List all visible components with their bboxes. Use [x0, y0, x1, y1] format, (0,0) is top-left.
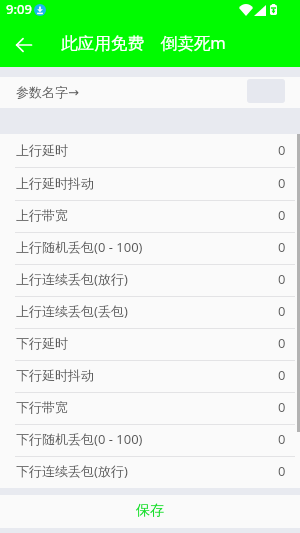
button[interactable]: 下行连续丢包(放行)	[0, 456, 300, 488]
staticText: 上行带宽	[16, 207, 68, 223]
staticText: 0	[278, 206, 286, 224]
button[interactable]: 上行连续丢包(丢包)	[0, 296, 300, 328]
button[interactable]: Back	[7, 28, 41, 62]
staticText: 下行延时	[16, 335, 68, 351]
staticText: 上行延时	[16, 142, 68, 158]
staticText: 下行延时抖动	[16, 367, 94, 383]
staticText: 参数名字→	[16, 84, 79, 100]
staticText: 0	[278, 174, 286, 192]
button[interactable]: 下行带宽	[0, 392, 300, 424]
staticText: 0	[278, 302, 286, 320]
staticText: 0	[278, 270, 286, 288]
button[interactable]: 上行延时抖动	[0, 167, 300, 200]
staticText: 0	[278, 238, 286, 256]
button[interactable]: 上行连续丢包(放行)	[0, 264, 300, 296]
staticText: 上行随机丢包(0 - 100)	[16, 238, 143, 256]
button[interactable]: 上行随机丢包(0 - 100)	[0, 232, 300, 264]
staticText: 下行带宽	[16, 399, 68, 415]
staticText: 上行连续丢包(丢包)	[16, 302, 128, 320]
staticText: 0	[278, 141, 286, 159]
staticText: 保存	[136, 502, 164, 520]
button[interactable]: 下行延时抖动	[0, 360, 300, 392]
button[interactable]: 下行随机丢包(0 - 100)	[0, 424, 300, 456]
staticText: 下行随机丢包(0 - 100)	[16, 430, 143, 448]
button[interactable]: 上行延时	[0, 134, 300, 167]
staticText: 下行连续丢包(放行)	[16, 462, 128, 480]
staticText: 0	[278, 462, 286, 480]
staticText: 9:09	[6, 0, 32, 18]
staticText: 上行连续丢包(放行)	[16, 270, 128, 288]
staticText: 0	[278, 430, 286, 448]
staticText: 0	[278, 366, 286, 384]
button[interactable]: 上行带宽	[0, 200, 300, 232]
staticText: 上行延时抖动	[16, 175, 94, 191]
staticText: 此应用免费 倒卖死m	[61, 31, 226, 54]
button[interactable]: 保存	[0, 495, 300, 528]
button[interactable]: 下行延时	[0, 328, 300, 360]
staticText: 0	[278, 334, 286, 352]
staticText: 0	[278, 398, 286, 416]
